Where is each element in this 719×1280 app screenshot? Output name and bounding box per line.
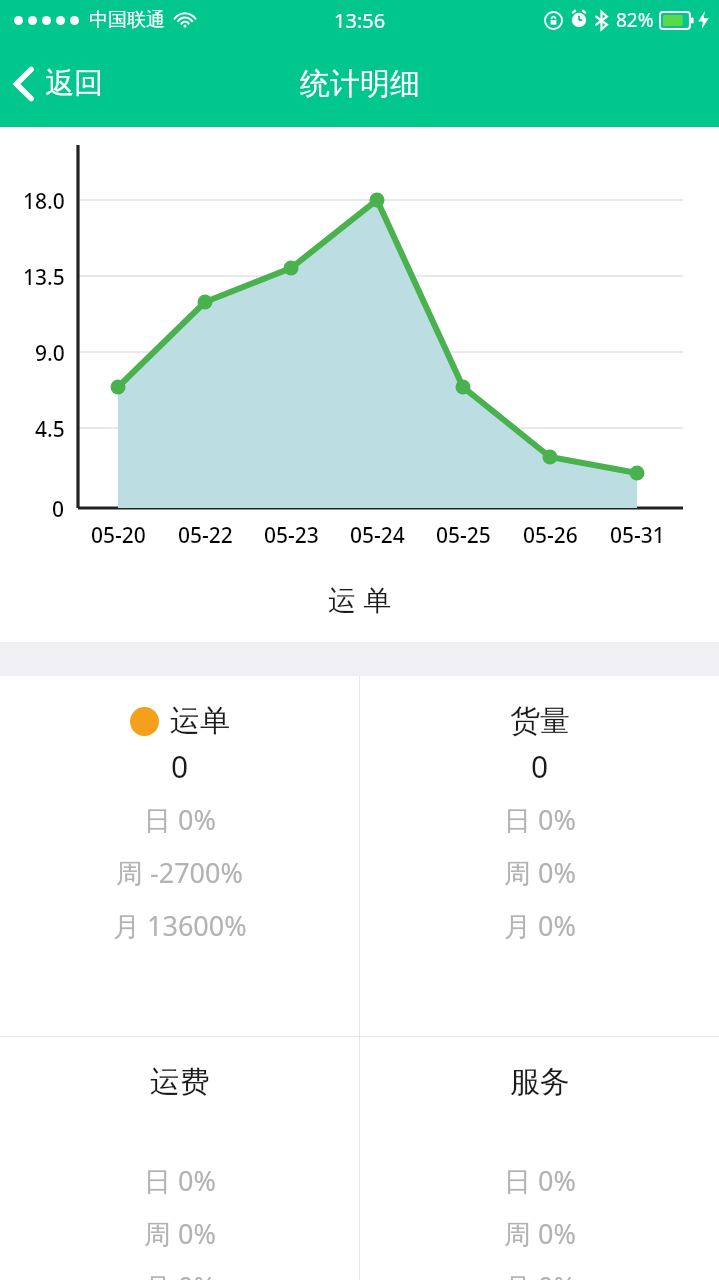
staticText: 货量 — [510, 702, 570, 740]
button[interactable]: 返回 — [0, 57, 117, 110]
staticText: 运 单 — [328, 580, 392, 618]
staticText: 日 0% — [504, 801, 576, 838]
staticText: 日 0% — [144, 1162, 216, 1199]
button[interactable]: 运单 — [0, 676, 359, 1036]
staticText: 05-23 — [264, 521, 319, 550]
staticText: 运单 — [170, 702, 230, 740]
staticText: 月 13600% — [113, 907, 247, 944]
staticText: 05-22 — [178, 521, 233, 550]
staticText: 13:56 — [334, 7, 386, 34]
staticText: 82% — [616, 7, 654, 33]
staticText: 05-20 — [91, 521, 146, 550]
button[interactable]: 服务 — [360, 1037, 719, 1280]
staticText: 月 0% — [504, 1268, 576, 1280]
button[interactable]: 运费 — [0, 1037, 359, 1280]
button[interactable]: 货量 — [360, 676, 719, 1036]
staticText: 中国联通 — [89, 8, 165, 32]
staticText: 月 0% — [504, 907, 576, 944]
staticText: 日 0% — [504, 1162, 576, 1199]
staticText: 0 — [531, 746, 549, 787]
staticText: 返回 — [45, 65, 103, 102]
staticText: 05-26 — [523, 521, 578, 550]
staticText: 9.0 — [35, 339, 65, 368]
staticText: 4.5 — [35, 415, 65, 444]
staticText: 周 0% — [504, 1215, 576, 1252]
staticText: 05-31 — [610, 521, 665, 550]
staticText: 周 0% — [144, 1215, 216, 1252]
staticText: 0 — [171, 746, 189, 787]
staticText: 服务 — [510, 1063, 570, 1101]
staticText: 周 -2700% — [116, 854, 243, 891]
staticText: 日 0% — [144, 801, 216, 838]
staticText: 13.5 — [23, 263, 65, 292]
staticText: 05-25 — [436, 521, 491, 550]
staticText: 0 — [52, 495, 65, 524]
staticText: 月 0% — [144, 1268, 216, 1280]
staticText: 周 0% — [504, 854, 576, 891]
staticText: 运费 — [150, 1063, 210, 1101]
staticText: 统计明细 — [300, 65, 420, 103]
staticText: 05-24 — [350, 521, 405, 550]
staticText: 18.0 — [23, 187, 65, 216]
